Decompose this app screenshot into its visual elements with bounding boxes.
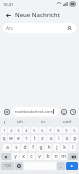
staticText: h	[47, 144, 51, 151]
staticText: 0	[73, 128, 76, 133]
staticText: 3	[17, 128, 20, 133]
staticText: z	[41, 135, 44, 142]
staticText: a	[6, 144, 9, 151]
button[interactable]: 1	[1, 127, 7, 133]
staticText: y	[14, 153, 17, 160]
button[interactable]: An:	[3, 23, 76, 33]
button[interactable]: f	[29, 144, 36, 151]
staticText: An:	[6, 25, 13, 31]
staticText: notebookcheck.com	[15, 109, 53, 114]
staticText: in	[41, 119, 45, 125]
staticText: ich	[17, 119, 23, 125]
staticText: t	[34, 135, 36, 142]
staticText: q	[2, 135, 6, 142]
button[interactable]: w	[8, 135, 14, 142]
button[interactable]: Senden	[66, 162, 78, 170]
button[interactable]: .	[57, 162, 65, 170]
button[interactable]: b	[44, 153, 51, 160]
staticText: 2	[10, 128, 13, 133]
button[interactable]: h	[45, 144, 52, 151]
staticText: n	[54, 153, 58, 160]
staticText: 9	[65, 128, 68, 133]
button[interactable]: Kontakte auswählen	[65, 24, 73, 32]
staticText: l	[72, 144, 74, 151]
button[interactable]: Zeitplan	[68, 107, 77, 116]
button[interactable]: v	[36, 153, 43, 160]
button[interactable]: g	[37, 144, 44, 151]
button[interactable]: notebookcheck.com	[12, 107, 58, 116]
staticText: p	[73, 135, 77, 142]
button[interactable]: q	[1, 135, 7, 142]
staticText: o	[65, 135, 69, 142]
staticText: j	[56, 144, 58, 151]
button[interactable]: i	[55, 135, 62, 142]
button[interactable]: k	[61, 144, 68, 151]
button[interactable]: r	[23, 135, 30, 142]
button[interactable]: Anhang hinzufügen	[2, 107, 11, 116]
button[interactable]: n	[52, 153, 59, 160]
button[interactable]: und	[55, 118, 79, 126]
staticText: e	[17, 135, 20, 142]
button[interactable]: t	[31, 135, 38, 142]
staticText: v	[38, 153, 41, 160]
button[interactable]: 0	[71, 127, 78, 133]
button[interactable]: e	[15, 135, 22, 142]
button[interactable]: l	[69, 144, 76, 151]
staticText: 8	[57, 128, 60, 133]
button[interactable]: x	[20, 153, 27, 160]
staticText: 10:41	[3, 2, 14, 7]
button[interactable]: Umschalttaste	[1, 153, 11, 160]
button[interactable]: o	[63, 135, 70, 142]
button[interactable]: 5	[31, 127, 38, 133]
staticText: k	[63, 144, 66, 151]
button[interactable]: c	[28, 153, 35, 160]
staticText: 4	[25, 128, 28, 133]
button[interactable]: 3	[15, 127, 22, 133]
button[interactable]: ich	[8, 118, 31, 126]
staticText: b	[46, 153, 50, 160]
staticText: 1	[3, 128, 6, 133]
staticText: Neue Nachricht	[15, 11, 60, 19]
button[interactable]: y	[12, 153, 19, 160]
button[interactable]: j	[53, 144, 60, 151]
staticText: g	[39, 144, 43, 151]
button[interactable]: p	[71, 135, 78, 142]
staticText: c	[30, 153, 33, 160]
button[interactable]: in	[31, 118, 55, 126]
button[interactable]: u	[47, 135, 54, 142]
staticText: .	[60, 163, 62, 170]
button[interactable]: d	[21, 144, 28, 151]
button[interactable]: 8	[55, 127, 62, 133]
button[interactable]: Emoji	[59, 107, 68, 116]
button[interactable]: 6	[39, 127, 46, 133]
button[interactable]: s	[12, 144, 20, 151]
staticText: ?123	[4, 164, 11, 168]
staticText: 5	[33, 128, 36, 133]
button[interactable]: a	[3, 144, 11, 151]
staticText: s	[15, 144, 18, 151]
staticText: m	[61, 153, 66, 160]
staticText: w	[9, 135, 13, 142]
staticText: r	[25, 135, 28, 142]
staticText: x	[22, 153, 25, 160]
staticText: 7	[49, 128, 52, 133]
button[interactable]: 2	[8, 127, 14, 133]
button[interactable]: m	[60, 153, 67, 160]
staticText: 6	[41, 128, 44, 133]
button[interactable]: ?123	[1, 162, 14, 170]
staticText: d	[23, 144, 27, 151]
button[interactable]: 9	[63, 127, 70, 133]
staticText: i	[58, 135, 60, 142]
button[interactable]: Emoji	[15, 162, 23, 170]
button[interactable]: z	[39, 135, 46, 142]
staticText: f	[32, 144, 34, 151]
staticText: u	[49, 135, 53, 142]
button[interactable]: Löschen	[68, 153, 78, 160]
button[interactable]: Weitere Optionen	[0, 118, 8, 126]
button[interactable]: Zurück	[3, 10, 13, 20]
button[interactable]: 4	[23, 127, 30, 133]
staticText: und	[63, 119, 71, 125]
button[interactable]: 7	[47, 127, 54, 133]
